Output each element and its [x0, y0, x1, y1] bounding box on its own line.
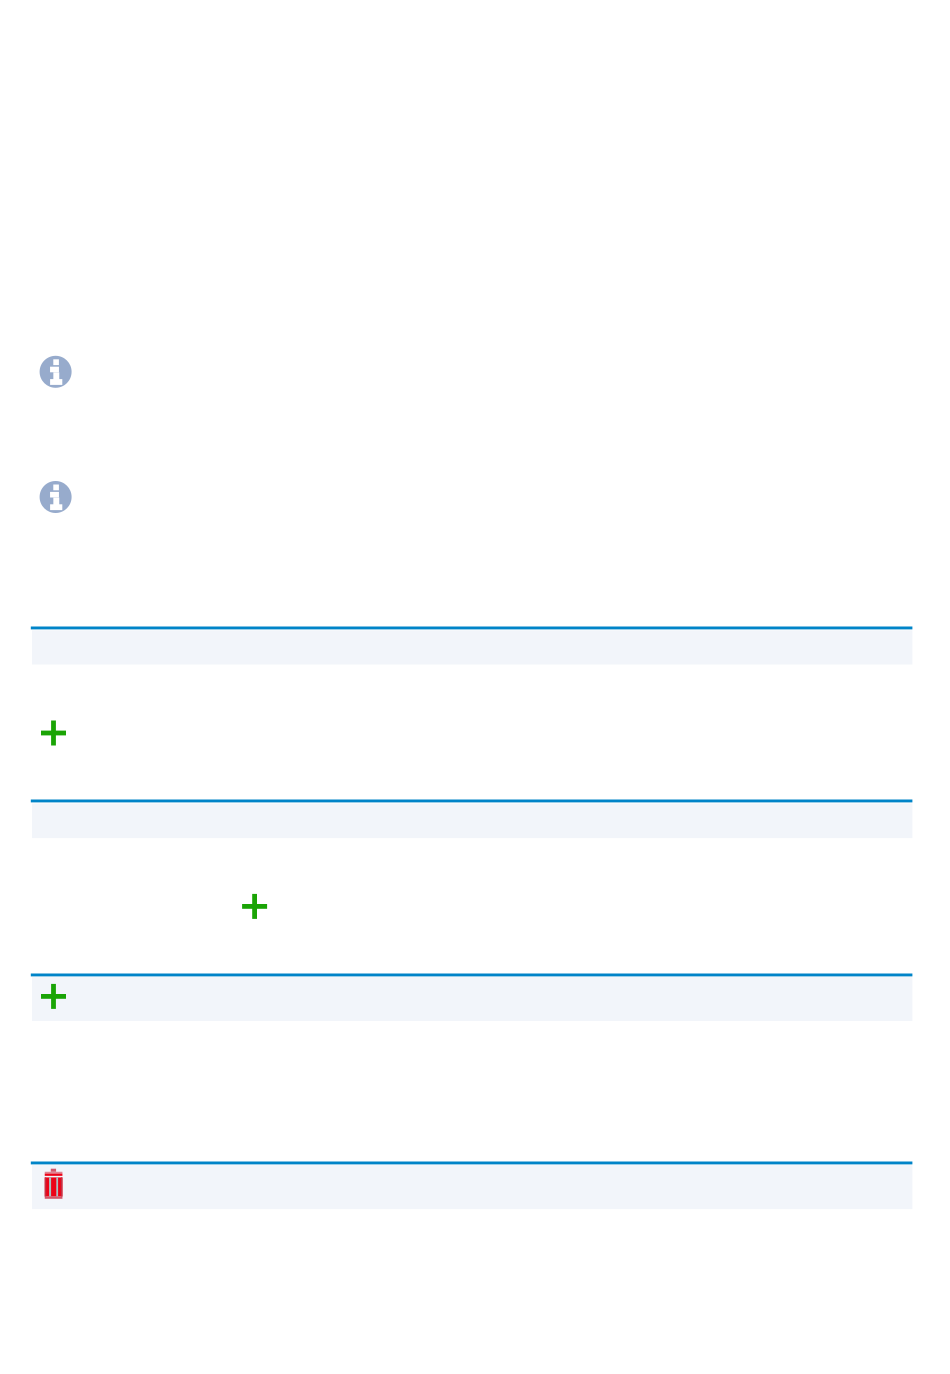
button[interactable]: Information	[40, 356, 72, 388]
button[interactable]: Delete	[31, 1161, 912, 1209]
button[interactable]: Add	[242, 894, 267, 919]
button[interactable]: Information	[40, 481, 72, 513]
button[interactable]: Add	[31, 973, 912, 1021]
button[interactable]: Add	[41, 720, 66, 745]
